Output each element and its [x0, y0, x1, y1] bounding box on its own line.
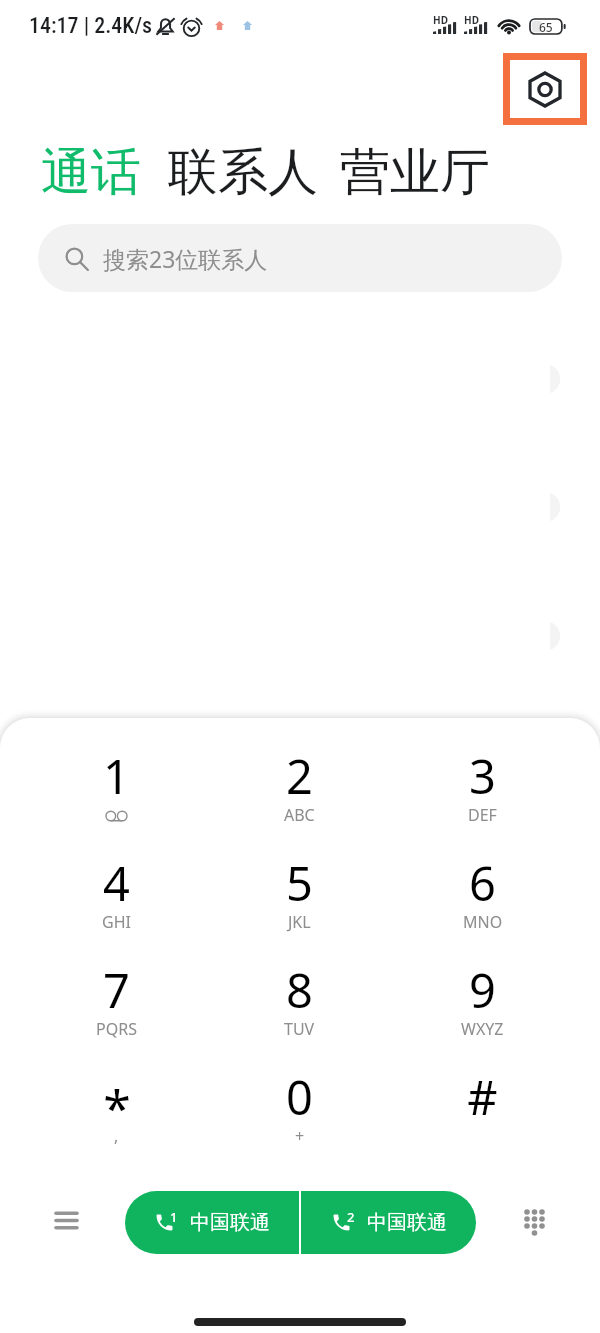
button[interactable]: Settings — [510, 60, 580, 118]
staticText: PQRS — [96, 1018, 137, 1040]
button[interactable]: # — [391, 1047, 574, 1154]
button[interactable]: 搜索23位联系人 — [38, 224, 562, 292]
staticText: 1 — [170, 1208, 178, 1226]
button[interactable]: 7 — [25, 940, 208, 1047]
staticText: ABC — [284, 804, 315, 826]
staticText: * — [103, 1074, 131, 1142]
staticText: WXYZ — [461, 1018, 504, 1040]
button[interactable]: 4 — [25, 833, 208, 940]
staticText: 65 — [539, 19, 553, 34]
staticText: DEF — [468, 804, 497, 826]
staticText: , — [114, 1125, 119, 1147]
button[interactable]: 0 — [208, 1047, 391, 1154]
staticText: 中国联通 — [367, 1210, 447, 1235]
staticText: 2 — [286, 744, 313, 808]
button[interactable]: Keypad — [504, 1192, 564, 1252]
button[interactable]: 营业厅 — [340, 141, 490, 204]
staticText: 3 — [469, 744, 496, 808]
button[interactable]: Menu — [36, 1192, 96, 1252]
staticText: 2 — [347, 1208, 355, 1226]
button[interactable]: 8 — [208, 940, 391, 1047]
button[interactable]: 1 — [125, 1191, 299, 1254]
staticText: GHI — [102, 911, 131, 933]
staticText: MNO — [463, 911, 503, 933]
staticText: + — [295, 1125, 305, 1147]
staticText: 6 — [469, 851, 496, 915]
staticText: 中国联通 — [190, 1210, 270, 1235]
staticText: 5 — [286, 851, 313, 915]
staticText: 搜索23位联系人 — [103, 243, 268, 274]
staticText: HD — [464, 13, 479, 27]
button[interactable]: 5 — [208, 833, 391, 940]
staticText: TUV — [284, 1018, 315, 1040]
button[interactable]: 2 — [208, 726, 391, 833]
staticText: 14:17 | 2.4K/s — [29, 13, 153, 39]
staticText: 7 — [103, 958, 130, 1022]
staticText: HD — [433, 13, 448, 27]
button[interactable]: 联系人 — [168, 141, 318, 204]
staticText: 8 — [286, 958, 313, 1022]
staticText: # — [467, 1065, 498, 1129]
button[interactable]: 1 — [25, 726, 208, 833]
button[interactable]: 9 — [391, 940, 574, 1047]
button[interactable]: * — [25, 1047, 208, 1154]
staticText: 1 — [103, 744, 130, 808]
staticText: 0 — [286, 1065, 313, 1129]
button[interactable]: 2 — [301, 1191, 476, 1254]
button[interactable]: 3 — [391, 726, 574, 833]
staticText: 4 — [103, 851, 130, 915]
staticText: 9 — [469, 958, 496, 1022]
staticText: JKL — [288, 911, 311, 933]
button[interactable]: 通话 — [41, 141, 141, 204]
button[interactable]: 6 — [391, 833, 574, 940]
